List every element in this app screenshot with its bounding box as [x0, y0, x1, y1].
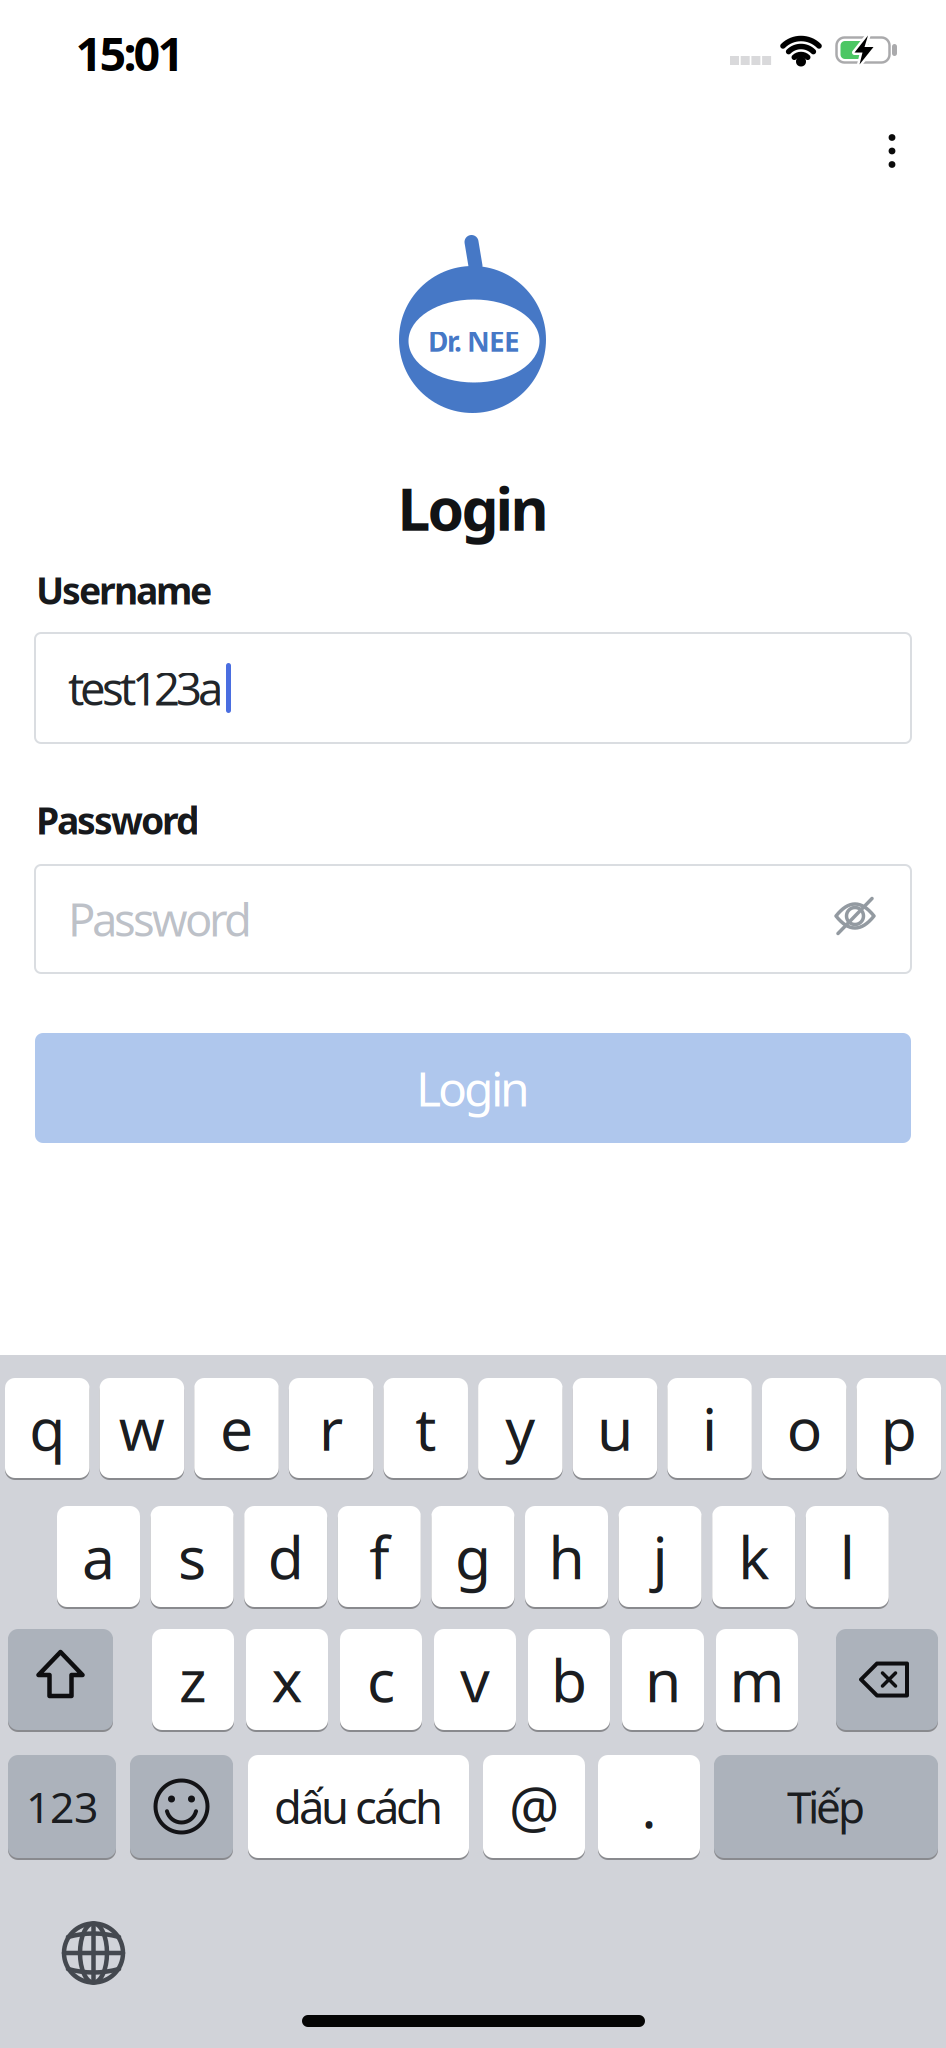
button[interactable]: n [622, 1629, 704, 1730]
staticText: l [840, 1517, 855, 1595]
staticText: h [548, 1517, 584, 1595]
button[interactable]: f [338, 1506, 421, 1607]
staticText: z [179, 1640, 207, 1718]
button[interactable]: dấu cách [248, 1755, 469, 1858]
staticText: Password [36, 795, 200, 845]
button[interactable]: a [57, 1506, 140, 1607]
staticText: f [369, 1517, 389, 1595]
button[interactable]: o [762, 1378, 846, 1478]
staticText: c [367, 1640, 395, 1718]
button[interactable]: d [244, 1506, 327, 1607]
staticText: x [271, 1640, 302, 1718]
button[interactable]: Tiếp [714, 1755, 938, 1858]
staticText: p [881, 1389, 917, 1467]
staticText: m [729, 1640, 784, 1718]
button[interactable]: c [340, 1629, 422, 1730]
staticText: b [551, 1640, 587, 1718]
staticText: r [319, 1389, 343, 1467]
staticText: u [597, 1389, 633, 1467]
staticText: dấu cách [274, 1776, 443, 1837]
button[interactable]: e [194, 1378, 279, 1478]
button[interactable]: v [434, 1629, 516, 1730]
staticText: q [29, 1389, 65, 1467]
staticText: Username [36, 565, 212, 615]
button[interactable]: Delete [836, 1629, 938, 1730]
staticText: Dr. NEE [428, 322, 520, 360]
staticText: s [178, 1517, 206, 1595]
staticText: w [119, 1389, 165, 1467]
button[interactable]: u [573, 1378, 657, 1478]
staticText: e [220, 1389, 253, 1467]
button[interactable]: p [857, 1378, 941, 1478]
staticText: i [702, 1389, 717, 1467]
staticText: 15:01 [75, 22, 184, 84]
button[interactable]: q [5, 1378, 89, 1478]
button[interactable]: h [525, 1506, 608, 1607]
button[interactable]: 123 [8, 1755, 116, 1858]
staticText: test123a [68, 658, 223, 718]
button[interactable]: . [598, 1755, 700, 1858]
staticText: 123 [26, 1778, 98, 1835]
staticText: a [82, 1517, 115, 1595]
button[interactable]: More options [867, 115, 917, 187]
staticText: t [415, 1389, 436, 1467]
button[interactable]: Show password [828, 870, 882, 962]
button[interactable]: w [100, 1378, 184, 1478]
button[interactable]: k [712, 1506, 795, 1607]
button[interactable]: Shift [8, 1629, 113, 1730]
button[interactable]: s [151, 1506, 234, 1607]
button[interactable]: i [667, 1378, 752, 1478]
button[interactable]: g [431, 1506, 514, 1607]
staticText: . [641, 1769, 656, 1844]
button[interactable]: b [528, 1629, 610, 1730]
staticText: d [268, 1517, 304, 1595]
button[interactable]: Password [35, 865, 911, 973]
button[interactable]: Emoji [130, 1755, 233, 1858]
button[interactable]: y [478, 1378, 563, 1478]
button[interactable]: t [383, 1378, 468, 1478]
staticText: v [460, 1640, 490, 1718]
button[interactable]: j [619, 1506, 702, 1607]
button[interactable]: r [289, 1378, 373, 1478]
staticText: @ [509, 1769, 559, 1844]
staticText: Password [68, 889, 252, 949]
staticText: g [455, 1517, 491, 1595]
staticText: o [787, 1389, 822, 1467]
staticText: Login [416, 1056, 530, 1120]
staticText: y [505, 1389, 535, 1467]
staticText: Tiếp [787, 1777, 865, 1836]
button[interactable]: @ [483, 1755, 585, 1858]
button[interactable]: l [806, 1506, 889, 1607]
staticText: Login [397, 469, 548, 547]
staticText: k [738, 1517, 769, 1595]
staticText: j [653, 1517, 668, 1595]
button[interactable]: z [152, 1629, 234, 1730]
button[interactable]: Login [35, 1033, 911, 1143]
button[interactable]: Username, test123a [35, 633, 911, 743]
staticText: n [645, 1640, 681, 1718]
button[interactable]: m [716, 1629, 798, 1730]
button[interactable]: Next keyboard [55, 1915, 131, 1991]
button[interactable]: x [246, 1629, 328, 1730]
